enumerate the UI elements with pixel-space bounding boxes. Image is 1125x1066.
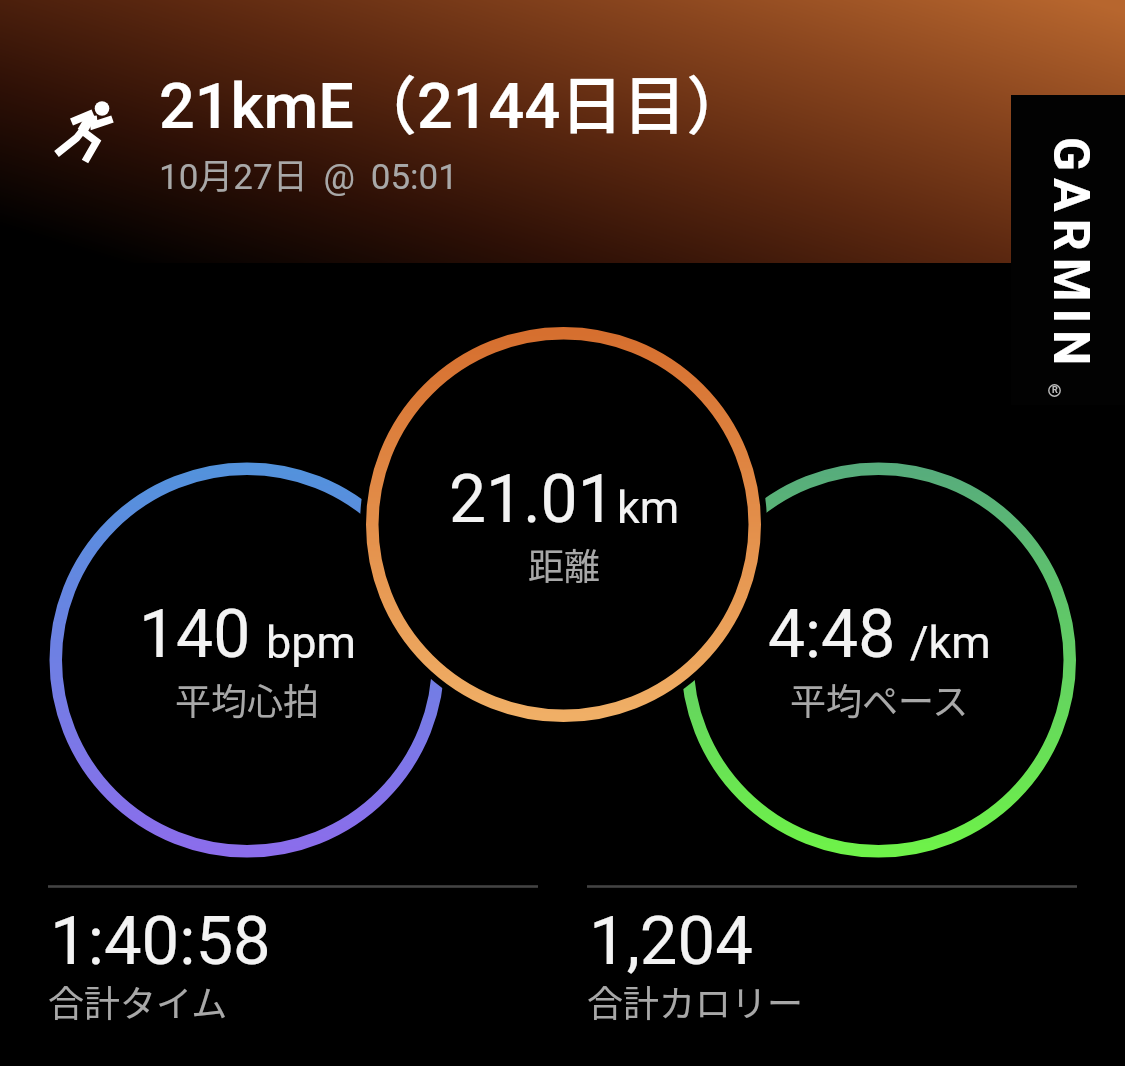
staticText: GARMIN <box>1041 137 1100 373</box>
staticText: R <box>1052 385 1058 396</box>
button[interactable]: Running activity <box>0 0 1125 263</box>
staticText: 1,204 <box>589 902 753 981</box>
staticText: bpm <box>266 616 356 669</box>
button[interactable]: 1:40:58 <box>48 895 538 1035</box>
staticText: 合計カロリー <box>587 975 804 1027</box>
button[interactable]: Garmin <box>1011 95 1125 405</box>
other: Running activity <box>52 95 120 167</box>
staticText: km <box>617 481 680 534</box>
staticText: 1:40:58 <box>50 902 271 981</box>
staticText: 21kmE（2144日目） <box>159 55 750 146</box>
button[interactable]: 140 <box>37 596 457 725</box>
staticText: 140 <box>139 596 251 673</box>
staticText: 距離 <box>528 538 601 590</box>
staticText: 合計タイム <box>48 975 228 1027</box>
staticText: 10月27日 @ 05:01 <box>159 148 458 199</box>
button[interactable]: 4:48 <box>669 596 1089 725</box>
staticText: 21.01 <box>449 461 615 538</box>
staticText: 4:48 <box>768 596 896 673</box>
button[interactable]: 1,204 <box>587 895 1077 1035</box>
staticText: 平均ペース <box>790 673 969 725</box>
staticText: 平均心拍 <box>175 673 320 725</box>
button[interactable]: 21.01 <box>354 461 774 590</box>
staticText: /km <box>910 616 991 669</box>
